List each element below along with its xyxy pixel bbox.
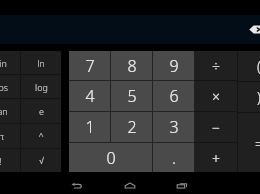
staticText: sin xyxy=(0,57,7,69)
staticText: + xyxy=(212,149,220,168)
staticText: e xyxy=(39,105,44,117)
button[interactable]: 1 xyxy=(69,112,110,142)
staticText: 5 xyxy=(127,85,137,107)
button[interactable]: log xyxy=(21,75,61,98)
staticText: √ xyxy=(39,156,44,166)
staticText: 7 xyxy=(85,55,95,77)
button[interactable]: tan xyxy=(0,99,20,123)
button[interactable]: ) xyxy=(238,82,260,112)
staticText: 4 xyxy=(85,85,95,107)
button[interactable]: ! xyxy=(0,149,20,173)
staticText: × xyxy=(212,87,220,106)
button[interactable]: 9 xyxy=(153,51,194,80)
button[interactable]: 3 xyxy=(153,112,194,142)
staticText: − xyxy=(212,118,220,137)
staticText: 9 xyxy=(169,55,179,77)
button[interactable]: 5 xyxy=(111,81,152,111)
button[interactable]: cos xyxy=(0,75,20,98)
staticText: 1 xyxy=(85,116,95,138)
staticText: cos xyxy=(0,81,8,93)
button[interactable]: 8 xyxy=(111,51,152,80)
button[interactable]: π xyxy=(0,124,20,148)
staticText: ÷ xyxy=(212,56,220,75)
button[interactable]: Home xyxy=(116,177,144,194)
button[interactable]: . xyxy=(153,143,194,173)
staticText: 3 xyxy=(169,116,179,138)
button[interactable]: − xyxy=(194,112,237,142)
staticText: ! xyxy=(0,155,2,167)
button[interactable]: e xyxy=(21,99,61,123)
button[interactable]: ( xyxy=(238,51,260,81)
staticText: ^ xyxy=(38,130,44,142)
staticText: 2 xyxy=(127,116,137,138)
button[interactable]: Recents xyxy=(168,177,196,194)
staticText: log xyxy=(35,81,48,93)
staticText: 8 xyxy=(127,55,137,77)
staticText: = xyxy=(255,134,260,153)
button[interactable]: × xyxy=(194,81,237,111)
staticText: tan xyxy=(0,105,8,117)
button[interactable]: √ xyxy=(21,149,61,173)
button[interactable]: Back xyxy=(63,177,91,194)
button[interactable]: 2 xyxy=(111,112,152,142)
button[interactable]: = xyxy=(238,113,260,173)
button[interactable]: sin xyxy=(0,51,20,74)
staticText: 0 xyxy=(106,147,116,169)
button[interactable]: ÷ xyxy=(194,51,237,80)
button[interactable]: 6 xyxy=(153,81,194,111)
staticText: ( xyxy=(257,57,260,76)
staticText: 6 xyxy=(169,85,179,107)
button[interactable]: 0 xyxy=(69,143,152,173)
staticText: ln xyxy=(37,57,45,69)
staticText: π xyxy=(0,130,4,142)
button[interactable]: 4 xyxy=(69,81,110,111)
button[interactable]: ^ xyxy=(21,124,61,148)
button[interactable]: ln xyxy=(21,51,61,74)
button[interactable]: + xyxy=(194,143,237,173)
staticText: ) xyxy=(257,88,260,107)
button[interactable]: 7 xyxy=(69,51,110,80)
button[interactable]: Delete xyxy=(248,22,260,37)
staticText: . xyxy=(172,147,176,169)
